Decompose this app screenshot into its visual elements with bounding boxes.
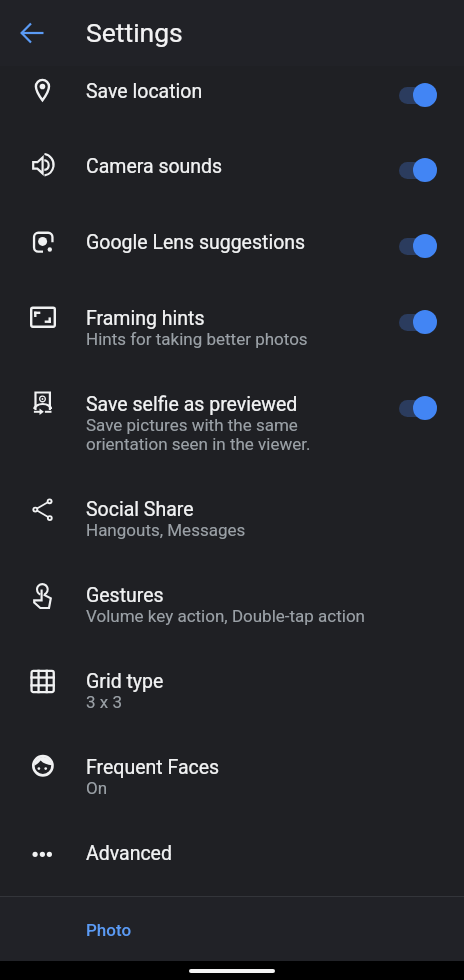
staticText: Social Share [86, 498, 194, 521]
staticText: On [86, 779, 108, 798]
button[interactable]: Back [12, 12, 54, 54]
button[interactable]: Camera sounds [0, 141, 464, 217]
staticText: Frequent Faces [86, 756, 220, 779]
staticText: Gestures [86, 584, 164, 607]
button[interactable]: Gestures [0, 570, 464, 656]
button[interactable]: Advanced [0, 828, 464, 896]
button[interactable]: Save location toggle [392, 76, 444, 114]
staticText: Grid type [86, 670, 164, 693]
staticText: Volume key action, Double-tap action [86, 607, 365, 626]
staticText: Framing hints [86, 307, 205, 330]
button[interactable]: Save location [0, 66, 464, 141]
button[interactable]: Social Share [0, 484, 464, 570]
button[interactable]: Framing hints toggle [392, 303, 444, 341]
staticText: Hangouts, Messages [86, 521, 246, 540]
staticText: Settings [86, 17, 183, 48]
button[interactable]: Grid type [0, 656, 464, 742]
button[interactable]: Google Lens suggestions [0, 217, 464, 293]
staticText: Advanced [86, 842, 172, 865]
staticText: Hints for taking better photos [86, 330, 308, 349]
staticText: Save pictures with the same orientation … [86, 416, 311, 454]
button[interactable]: Photo [0, 897, 464, 961]
button[interactable]: Save selfie as previewed [0, 379, 464, 484]
staticText: 3 x 3 [86, 693, 122, 712]
button[interactable]: Save selfie as previewed toggle [392, 389, 444, 427]
staticText: Camera sounds [86, 155, 223, 178]
staticText: Save location [86, 80, 203, 103]
staticText: Save selfie as previewed [86, 393, 298, 416]
staticText: Photo [86, 920, 132, 940]
button[interactable]: Google Lens suggestions toggle [392, 227, 444, 265]
staticText: Google Lens suggestions [86, 231, 306, 254]
button[interactable]: Framing hints [0, 293, 464, 379]
button[interactable]: Frequent Faces [0, 742, 464, 828]
button[interactable]: Camera sounds toggle [392, 151, 444, 189]
